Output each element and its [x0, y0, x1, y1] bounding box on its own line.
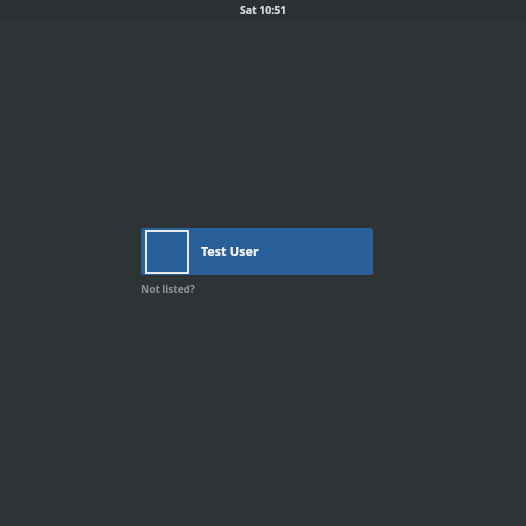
other: User avatar — [145, 230, 189, 274]
button[interactable]: Sat 10:51 — [232, 1, 295, 19]
button[interactable]: Not listed? — [141, 282, 203, 299]
staticText: Not listed? — [141, 282, 195, 296]
button[interactable]: User avatar — [141, 228, 373, 275]
staticText: Test User — [201, 243, 259, 260]
staticText: Sat 10:51 — [240, 3, 287, 17]
